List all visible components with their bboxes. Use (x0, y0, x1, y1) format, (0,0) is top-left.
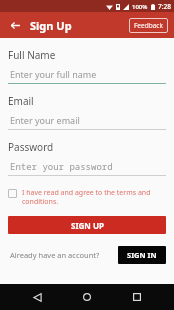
button[interactable]: Home (74, 284, 100, 310)
button[interactable]: Enter your email (8, 114, 166, 130)
button[interactable]: Feedback (129, 18, 168, 33)
staticText: Email (8, 94, 34, 108)
button[interactable]: Enter your password (8, 160, 166, 176)
button[interactable]: SIGN IN (118, 246, 166, 264)
button[interactable]: Back (24, 284, 50, 310)
button[interactable]: I have read and agree to the terms and c… (8, 188, 166, 206)
button[interactable]: Recent apps (124, 284, 150, 310)
staticText: Full Name (8, 48, 56, 62)
staticText: Enter your email (10, 114, 80, 126)
staticText: 100% (132, 3, 148, 11)
staticText: Password (8, 140, 54, 154)
staticText: 7:28 (158, 2, 171, 11)
button[interactable]: SIGN UP (8, 216, 166, 234)
staticText: Feedback (134, 21, 163, 30)
button[interactable]: Enter your full name (8, 68, 166, 84)
button[interactable]: Back (6, 16, 24, 34)
staticText: I have read and agree to the terms and c… (22, 188, 166, 206)
staticText: Already have an account? (10, 250, 100, 260)
staticText: SIGN IN (127, 250, 157, 260)
staticText: Sign Up (30, 18, 72, 33)
staticText: Enter your full name (10, 68, 97, 80)
staticText: SIGN UP (71, 220, 104, 231)
staticText: Enter your password (10, 160, 113, 172)
